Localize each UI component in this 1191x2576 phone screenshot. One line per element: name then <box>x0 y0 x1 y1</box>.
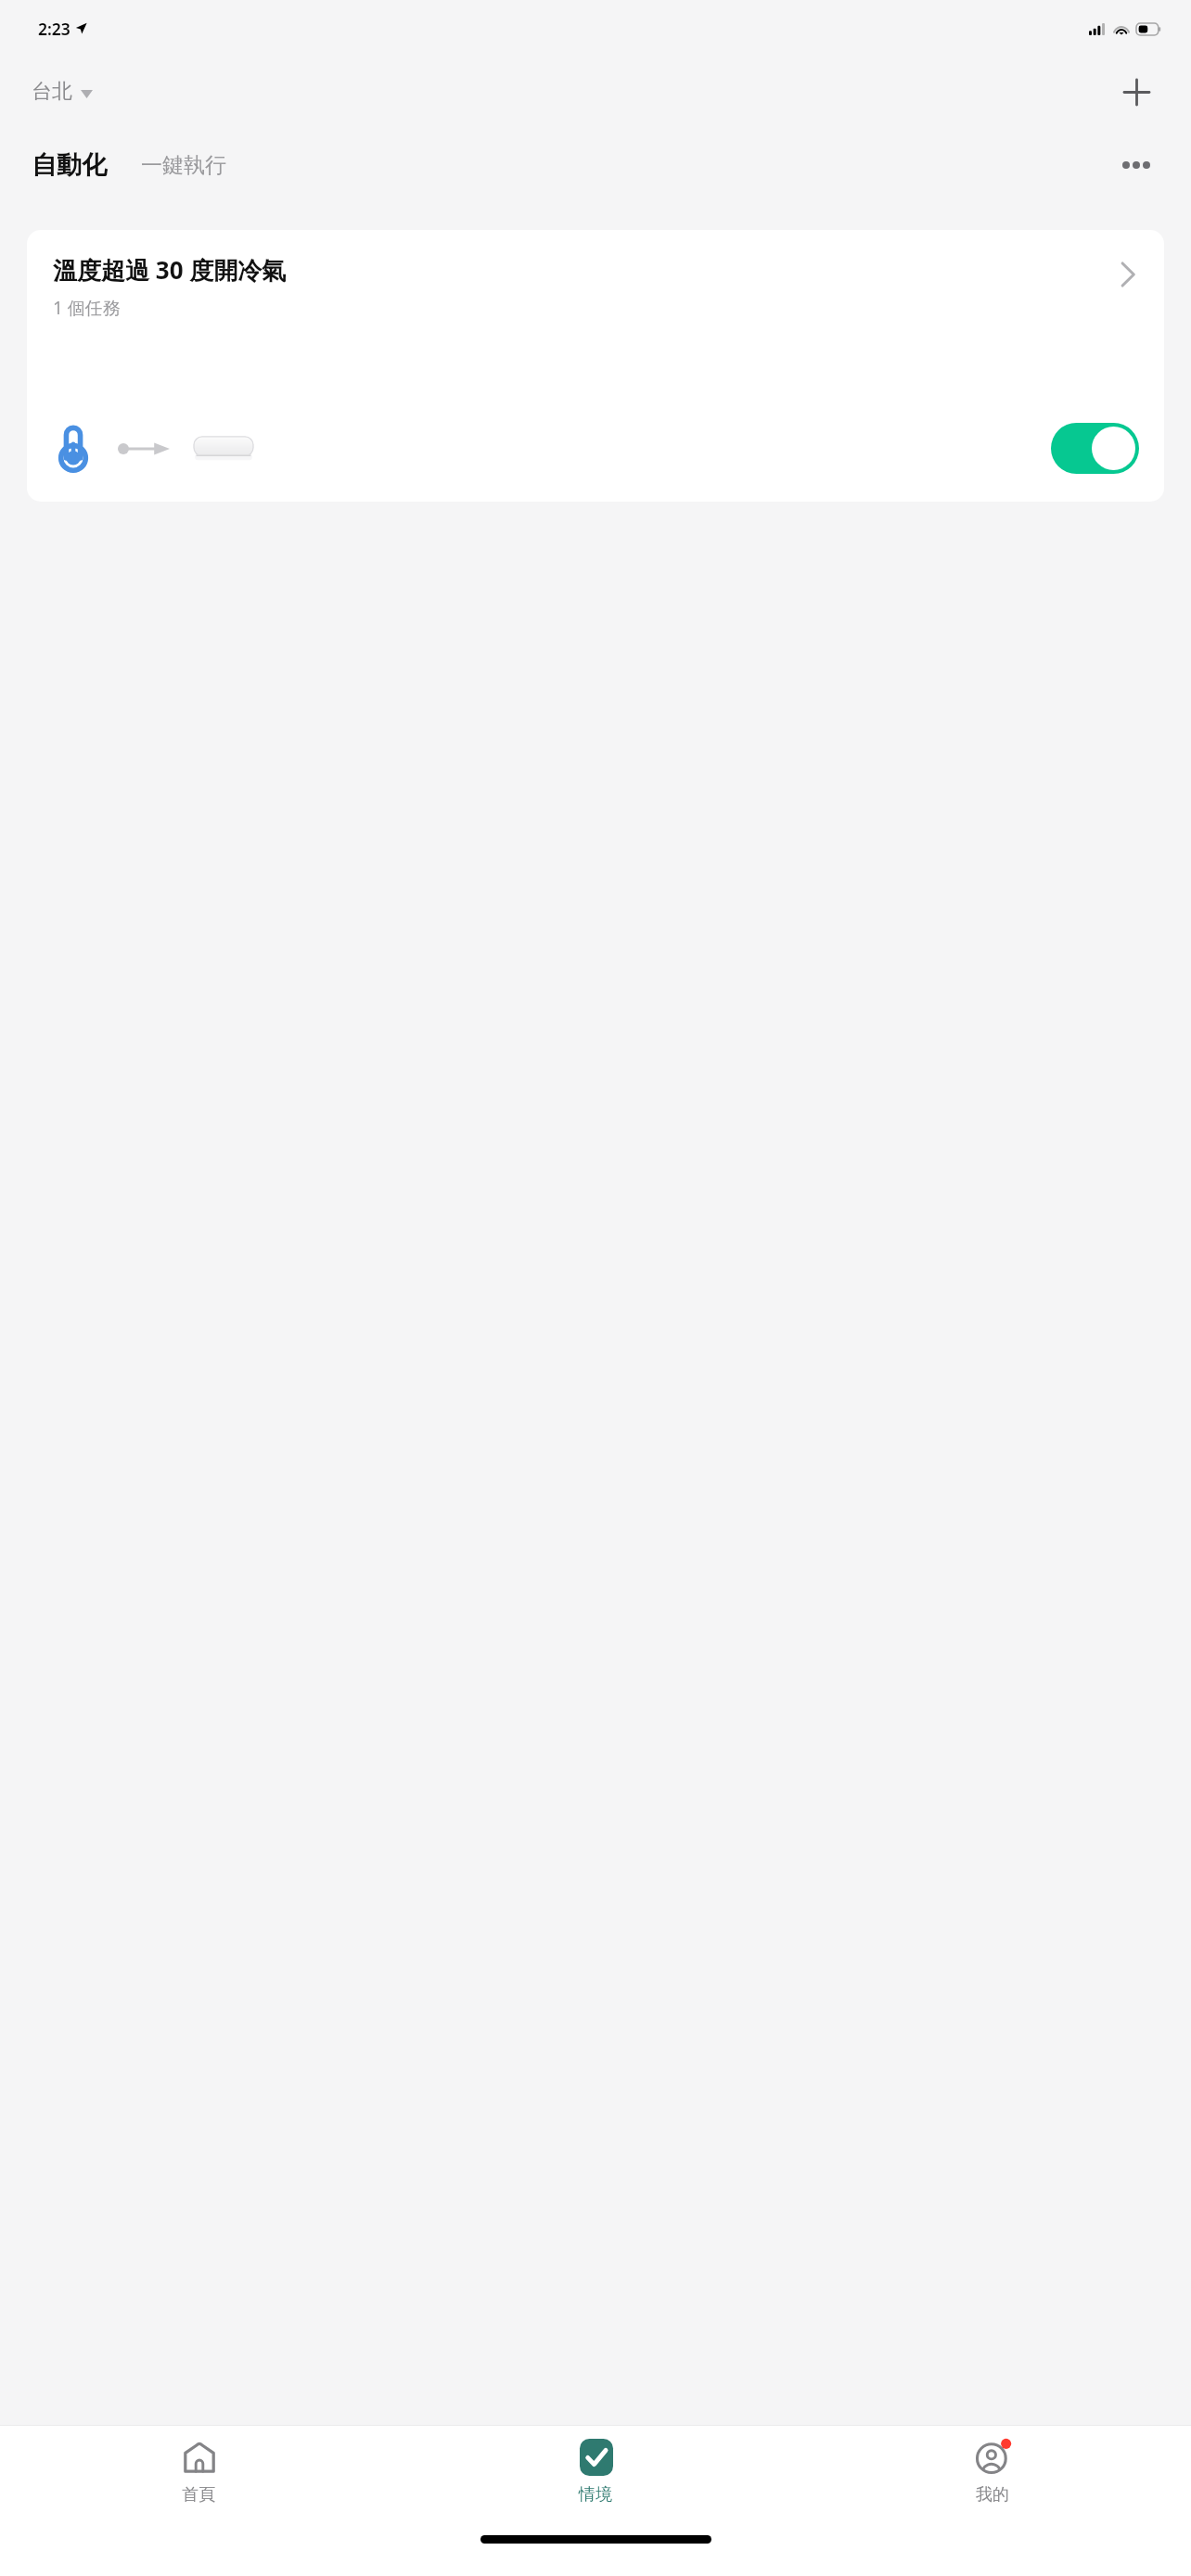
other: Air conditioner <box>194 435 253 463</box>
button[interactable]: 情境 <box>397 2426 794 2517</box>
button[interactable]: 台北 <box>26 73 98 110</box>
button[interactable]: Automation enabled <box>1051 423 1139 474</box>
staticText: 1 個任務 <box>53 296 121 320</box>
button[interactable]: Add <box>1115 70 1158 113</box>
staticText: 情境 <box>579 2484 612 2506</box>
staticText: 溫度超過 30 度開冷氣 <box>53 253 287 287</box>
other: Temperature trigger <box>57 425 90 473</box>
button[interactable]: 一鍵執行 <box>138 148 229 183</box>
button[interactable]: 自動化 <box>29 146 109 185</box>
staticText: 首頁 <box>182 2484 215 2506</box>
staticText: 我的 <box>976 2484 1009 2506</box>
button[interactable]: 我的 <box>794 2426 1191 2517</box>
button[interactable]: More options <box>1115 144 1158 186</box>
staticText: 台北 <box>32 79 72 105</box>
staticText: 一鍵執行 <box>141 152 226 179</box>
staticText: 2:23 <box>38 18 70 40</box>
button[interactable]: 首頁 <box>0 2426 397 2517</box>
button[interactable]: Open automation details <box>1112 259 1144 290</box>
staticText: 自動化 <box>32 149 107 181</box>
button[interactable]: 溫度超過 30 度開冷氣 <box>27 230 1164 502</box>
